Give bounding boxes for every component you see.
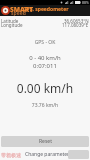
staticText: 117.08039°E [62,22,89,28]
staticText: SMART [10,5,33,14]
staticText: 0:07:011 [0,62,90,70]
staticText: 36.60653°N [64,18,89,24]
button[interactable]: Reset [1,136,89,147]
staticText: Longitude [1,22,23,28]
button[interactable]: Change parameters [25,151,72,158]
staticText: 带着极速 [1,152,21,158]
staticText: Latitude [1,18,19,24]
staticText: GPS, speedometer [23,6,69,13]
staticText: speed [11,10,26,17]
staticText: Reset [39,138,52,145]
staticText: 88% [82,0,89,5]
staticText: 0 - 40 km/h [0,54,90,62]
staticText: 0.00 km/h [0,80,90,96]
staticText: 73.76 km/h [0,102,90,109]
staticText: GPS - OK [0,39,90,46]
